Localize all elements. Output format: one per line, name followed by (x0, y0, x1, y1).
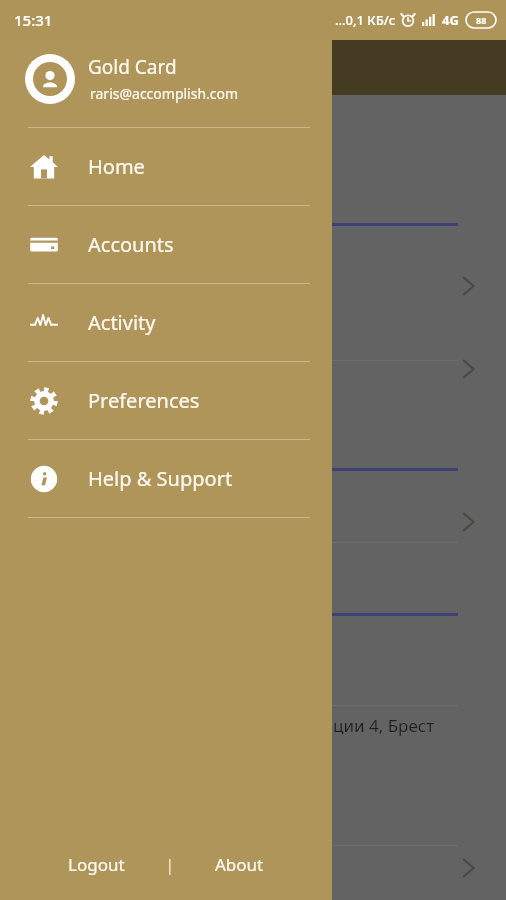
staticText: Activity (88, 309, 156, 336)
staticText: ции 4, Брест (333, 714, 435, 737)
staticText: Preferences (88, 387, 200, 414)
staticText: 88 (476, 14, 487, 26)
other: Preferences (29, 386, 59, 416)
button[interactable]: Preferences (0, 362, 332, 439)
staticText: 15:31 (14, 10, 53, 30)
staticText: 4G (442, 11, 459, 29)
button[interactable]: Open item (456, 509, 482, 535)
staticText: Logout (68, 853, 125, 876)
staticText: raris@accomplish.com (90, 84, 239, 103)
other: Help and Support (29, 464, 59, 494)
button[interactable]: Logout (56, 847, 137, 882)
button[interactable]: Help and Support (0, 440, 332, 517)
button[interactable]: Accounts (0, 206, 332, 283)
staticText: …0,1 КБ/с (335, 11, 396, 29)
button[interactable]: Open item (456, 273, 482, 299)
other: Home (29, 152, 59, 182)
button[interactable]: Open item (456, 855, 482, 881)
button[interactable]: Home (0, 128, 332, 205)
button[interactable]: Open item (456, 356, 482, 382)
other: Activity (29, 308, 59, 338)
staticText: Accounts (88, 231, 174, 258)
other: Accounts (29, 230, 59, 260)
staticText: Help & Support (88, 465, 233, 492)
button[interactable]: Activity (0, 284, 332, 361)
staticText: Gold Card (88, 54, 177, 80)
staticText: | (165, 853, 175, 876)
button[interactable]: About (203, 847, 276, 882)
staticText: Home (88, 153, 145, 180)
staticText: About (215, 853, 264, 876)
